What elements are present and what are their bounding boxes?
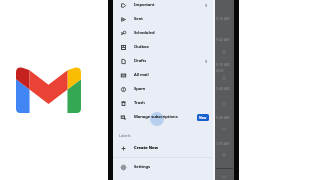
staticText: Sent (134, 16, 143, 22)
staticText: Outbox (134, 44, 149, 50)
button[interactable]: Manage subscriptions (113, 110, 213, 124)
staticText: Manage subscriptions (134, 114, 178, 120)
button[interactable]: All mail (113, 68, 213, 82)
button[interactable]: Important (113, 0, 213, 12)
staticText: 4/35 (216, 68, 224, 73)
button[interactable]: Spam (113, 82, 213, 96)
staticText: 9:42 AM (216, 37, 230, 42)
staticText: Drafts (134, 58, 147, 64)
staticText: New (199, 115, 207, 120)
staticText: Create New (134, 145, 159, 151)
staticText: All mail (134, 72, 149, 78)
button[interactable]: Scheduled (113, 26, 213, 40)
staticText: 9:40 AM (216, 115, 230, 120)
staticText: Trash (134, 100, 145, 106)
staticText: All mail (134, 72, 149, 78)
staticText: Spam (134, 86, 146, 92)
staticText: 9:10 AM (216, 16, 230, 21)
staticText: Settings (134, 164, 151, 170)
staticText: 9:16 AM (216, 62, 230, 67)
staticText: Spam (134, 86, 146, 92)
button[interactable]: Create New (113, 141, 213, 155)
staticText: 9:44 AM (216, 86, 230, 91)
staticText: Sent (134, 16, 143, 22)
staticText: 9 (205, 59, 208, 64)
staticText: Trash (134, 100, 145, 106)
staticText: Scheduled (134, 30, 155, 36)
button[interactable]: Trash (113, 96, 213, 110)
button[interactable]: Outbox (113, 40, 213, 54)
staticText: Outbox (134, 44, 149, 50)
button[interactable]: Settings (113, 160, 213, 174)
staticText: 9 (205, 3, 208, 8)
staticText: Important (134, 2, 155, 8)
staticText: Labels (119, 133, 131, 138)
staticText: Scheduled (134, 30, 155, 36)
staticText: Create New (134, 145, 159, 151)
staticText: Manage subscriptions (134, 114, 178, 120)
staticText: 7:55 AM (216, 141, 230, 146)
staticText: Drafts (134, 58, 147, 64)
button[interactable]: Drafts (113, 54, 213, 68)
staticText: Important (134, 2, 155, 8)
staticText: Settings (134, 164, 151, 170)
button[interactable]: Sent (113, 12, 213, 26)
